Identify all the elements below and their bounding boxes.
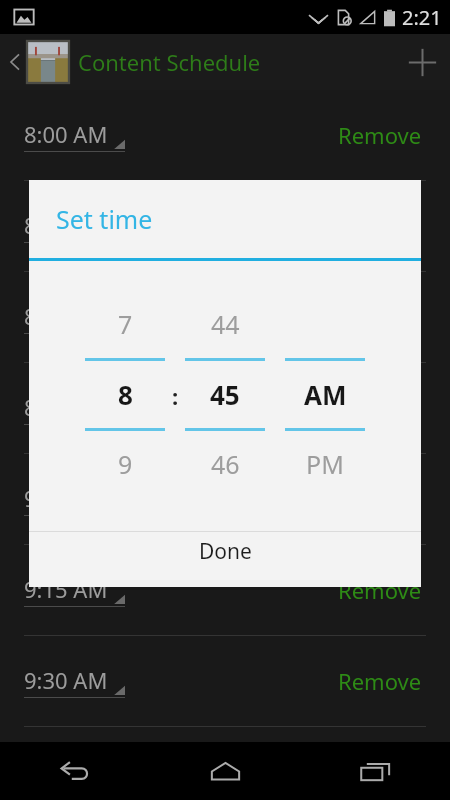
button[interactable]: Remove (334, 480, 426, 518)
staticText: 9 (118, 447, 133, 481)
button[interactable]: Recent apps (300, 742, 450, 800)
staticText: Remove (338, 575, 422, 605)
button[interactable]: Remove (334, 571, 426, 609)
button[interactable]: 8:30 AM (24, 301, 125, 334)
button[interactable]: 8:00 AM (24, 119, 125, 152)
button[interactable]: 8 (85, 361, 165, 428)
staticText: 2:21 (402, 4, 442, 31)
button[interactable]: 45 (185, 361, 265, 428)
staticText: 8:00 AM (24, 119, 108, 149)
staticText: 9:15 AM (24, 574, 108, 604)
button[interactable]: 8:45 AM (24, 392, 125, 425)
button[interactable]: Add schedule (394, 34, 450, 90)
button[interactable]: Remove (334, 389, 426, 427)
staticText: Remove (338, 120, 422, 150)
staticText: 44 (211, 307, 240, 341)
staticText: 45 (210, 377, 240, 412)
staticText: 8:15 AM (24, 210, 108, 240)
staticText: AM (304, 377, 347, 412)
button[interactable]: Home (150, 742, 300, 800)
staticText: 8:45 AM (24, 392, 108, 422)
button[interactable]: Remove (334, 662, 426, 700)
staticText: Content Schedule (78, 47, 261, 77)
button[interactable]: PM (285, 431, 365, 528)
button[interactable]: 9:30 AM (24, 665, 125, 698)
button[interactable]: Remove (334, 207, 426, 245)
button[interactable]: 44 (185, 261, 265, 358)
staticText: Remove (338, 484, 422, 514)
button[interactable]: 9:15 AM (24, 574, 125, 607)
button[interactable]: Done (29, 532, 421, 587)
button[interactable]: Back (0, 742, 150, 800)
staticText: Remove (338, 211, 422, 241)
staticText: 8:30 AM (24, 301, 108, 331)
button[interactable]: AM (285, 361, 365, 428)
button[interactable]: 8:15 AM (24, 210, 125, 243)
staticText: 8 (118, 377, 133, 412)
staticText: Remove (338, 666, 422, 696)
staticText: 9:00 AM (24, 483, 108, 513)
button[interactable]: Remove (334, 116, 426, 154)
staticText: PM (306, 447, 344, 481)
staticText: Remove (338, 393, 422, 423)
staticText: 7 (118, 307, 133, 341)
staticText: 46 (211, 447, 240, 481)
staticText: 9:30 AM (24, 665, 108, 695)
button[interactable]: 46 (185, 431, 265, 528)
button[interactable]: Navigate up (0, 41, 269, 83)
staticText: Set time (56, 202, 153, 236)
staticText: Remove (338, 302, 422, 332)
button[interactable]: 7 (85, 261, 165, 358)
other: Navigate up (5, 52, 25, 72)
button[interactable]: Remove (334, 298, 426, 336)
button[interactable]: 9:00 AM (24, 483, 125, 516)
button[interactable]: 9 (85, 431, 165, 528)
staticText: : (172, 381, 179, 411)
staticText: Done (199, 537, 252, 566)
